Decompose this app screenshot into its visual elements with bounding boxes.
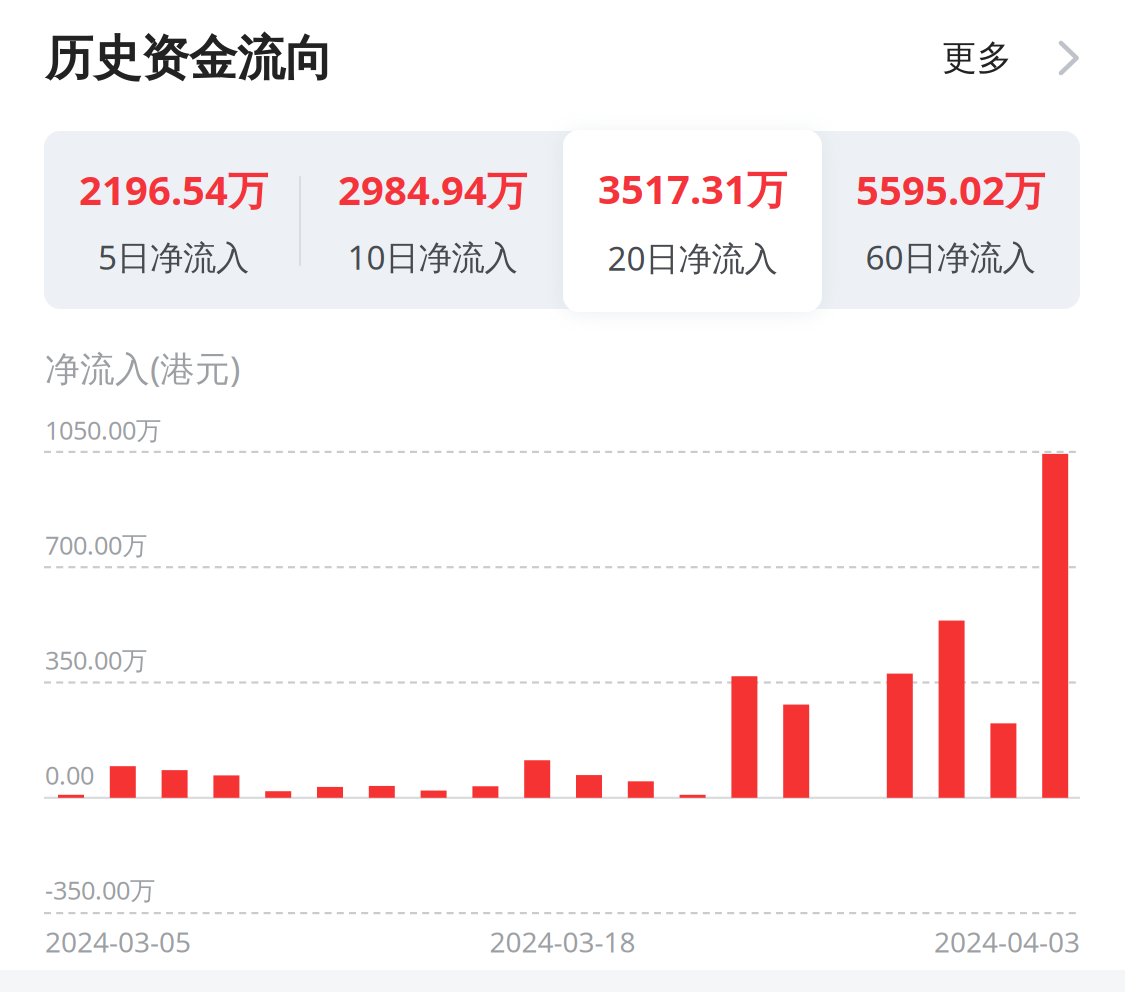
staticText: 0.00 bbox=[45, 758, 94, 792]
staticText: 20日净流入 bbox=[606, 235, 776, 279]
staticText: 2024-03-05 bbox=[45, 923, 191, 960]
button[interactable]: 3517.31万 bbox=[562, 131, 821, 309]
staticText: 2024-04-03 bbox=[934, 923, 1080, 960]
staticText: 2984.94万 bbox=[338, 163, 527, 216]
button[interactable]: 3517.31万 bbox=[563, 130, 822, 312]
staticText: 5日净流入 bbox=[98, 235, 249, 279]
staticText: 5595.02万 bbox=[856, 163, 1045, 216]
staticText: 10日净流入 bbox=[347, 235, 517, 279]
button[interactable]: 2196.54万 bbox=[44, 131, 303, 309]
staticText: 3517.31万 bbox=[598, 162, 787, 215]
staticText: -350.00万 bbox=[45, 873, 155, 907]
staticText: 3517.31万 bbox=[597, 163, 786, 216]
staticText: 更多 bbox=[942, 37, 1012, 79]
staticText: 60日净流入 bbox=[865, 235, 1035, 279]
staticText: 20日净流入 bbox=[607, 236, 777, 280]
staticText: 历史资金流向 bbox=[45, 29, 333, 88]
staticText: 700.00万 bbox=[45, 528, 147, 562]
staticText: 1050.00万 bbox=[45, 413, 161, 447]
button[interactable]: 更多 bbox=[930, 36, 1092, 80]
staticText: 2196.54万 bbox=[79, 163, 268, 216]
staticText: 350.00万 bbox=[45, 643, 147, 677]
button[interactable]: 2984.94万 bbox=[303, 131, 562, 309]
staticText: 2024-03-18 bbox=[489, 923, 635, 960]
staticText: 净流入(港元) bbox=[45, 345, 240, 391]
button[interactable]: 5595.02万 bbox=[821, 131, 1080, 309]
